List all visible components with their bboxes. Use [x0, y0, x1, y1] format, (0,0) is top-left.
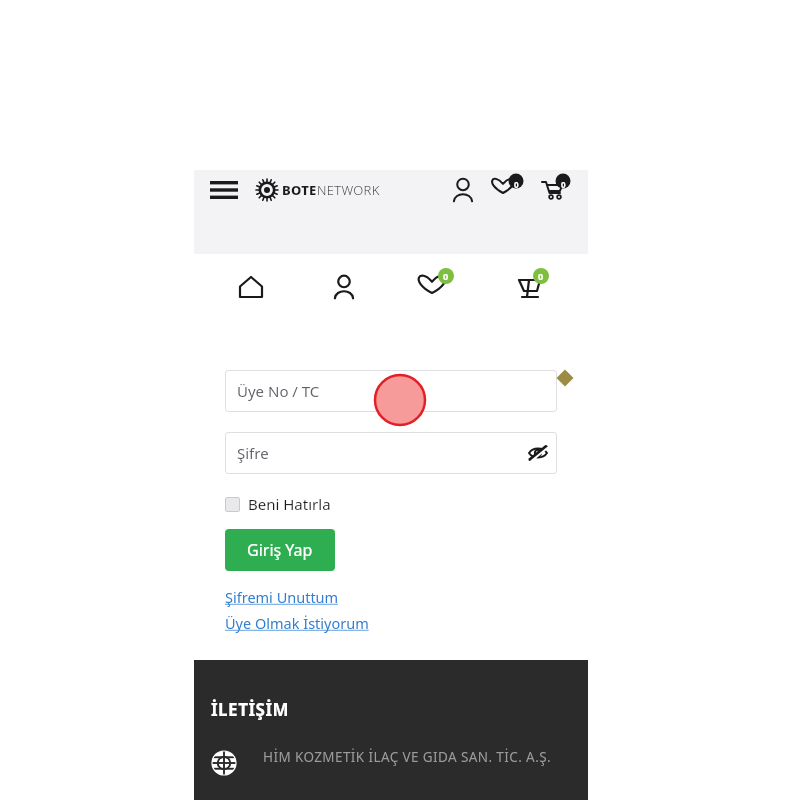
button[interactable]: Şifremi Unuttum [225, 587, 339, 607]
staticText: HİM KOZMETİK İLAÇ VE GIDA SAN. TİC. A.Ş. [263, 748, 551, 766]
button[interactable]: Account [445, 172, 481, 208]
staticText: 0 [538, 270, 544, 282]
staticText: 0 [561, 179, 566, 190]
staticText: 0 [514, 179, 519, 190]
button[interactable]: Şifre [225, 432, 557, 474]
button[interactable]: Menu [207, 173, 241, 207]
staticText: NETWORK [317, 181, 380, 199]
button[interactable]: Cart, 0 [484, 256, 578, 318]
button[interactable]: Show password [519, 434, 557, 472]
staticText: 0 [443, 270, 449, 282]
button[interactable]: Cart, 0 [535, 170, 575, 210]
button[interactable]: Account [297, 256, 390, 318]
staticText: Giriş Yap [247, 539, 313, 561]
staticText: İLETİŞİM [211, 698, 290, 721]
staticText: Üye No / TC [237, 381, 320, 401]
button[interactable]: Favourites, 0 [390, 256, 484, 318]
button[interactable]: Giriş Yap [225, 529, 335, 571]
staticText: Şifre [237, 443, 269, 463]
button[interactable]: Üye Olmak İstiyorum [225, 613, 369, 633]
button[interactable]: BOTE [255, 178, 380, 202]
button[interactable]: Üye No / TC [225, 370, 557, 412]
staticText: Beni Hatırla [248, 494, 331, 514]
button[interactable]: Home [204, 256, 297, 318]
button[interactable]: Favourites, 0 [489, 170, 529, 210]
button[interactable]: Beni Hatırla [225, 494, 331, 514]
staticText: BOTE [282, 181, 317, 199]
